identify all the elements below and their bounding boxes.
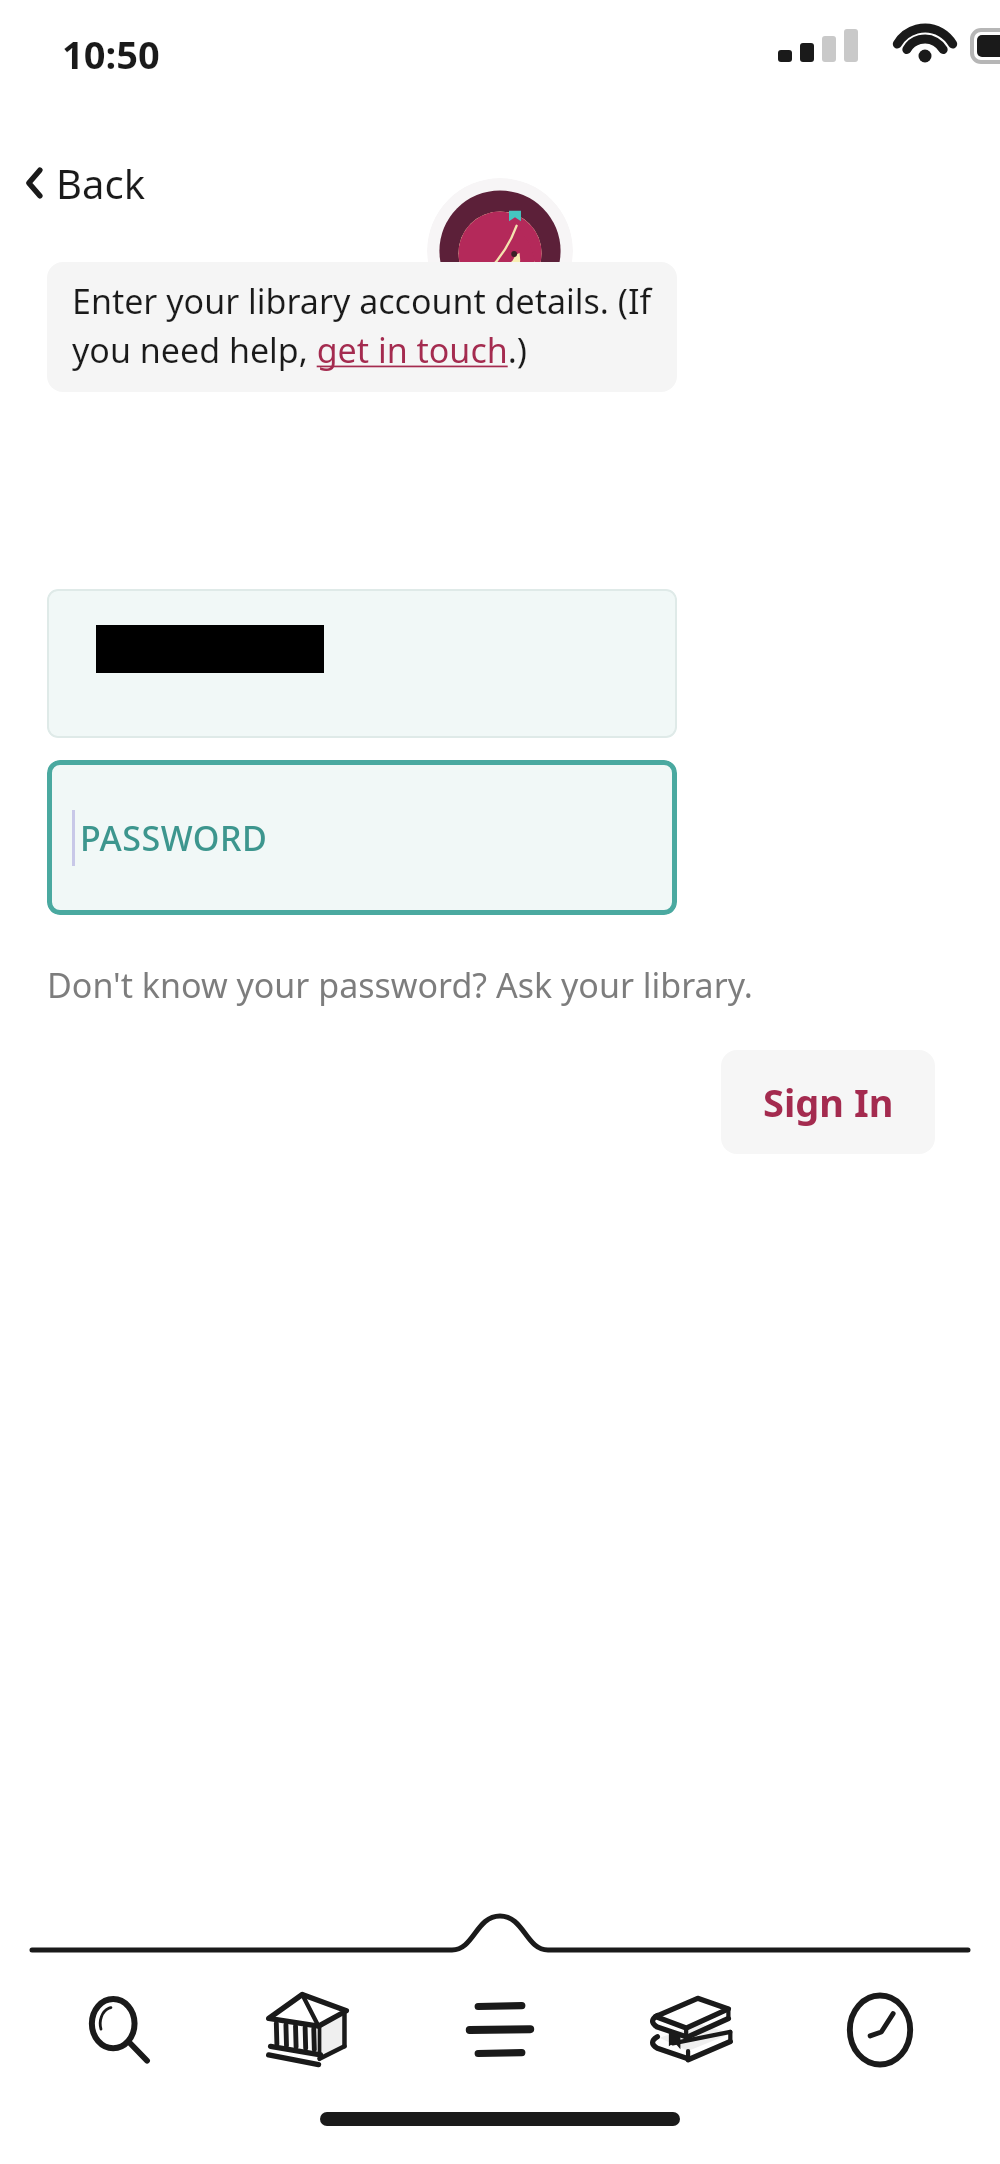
button[interactable]: Timeline (812, 1975, 948, 2085)
staticText: Sign In (763, 1076, 894, 1128)
staticText: Don't know your password? Ask your libra… (47, 962, 753, 1008)
button[interactable]: Back (14, 148, 155, 218)
button[interactable] (47, 589, 677, 738)
staticText: 10:50 (62, 28, 160, 80)
button[interactable]: Sign In (721, 1050, 935, 1154)
staticText: Back (56, 156, 145, 210)
button[interactable]: Library (240, 1975, 376, 2085)
button[interactable]: Menu (432, 1975, 568, 2085)
button[interactable]: Account avatar (427, 178, 573, 324)
staticText: Enter your library account details. (If … (72, 278, 663, 373)
button[interactable]: PASSWORD (47, 760, 677, 915)
button[interactable]: Shelf (622, 1975, 758, 2085)
button[interactable]: Search (50, 1975, 186, 2085)
staticText: PASSWORD (80, 815, 268, 861)
